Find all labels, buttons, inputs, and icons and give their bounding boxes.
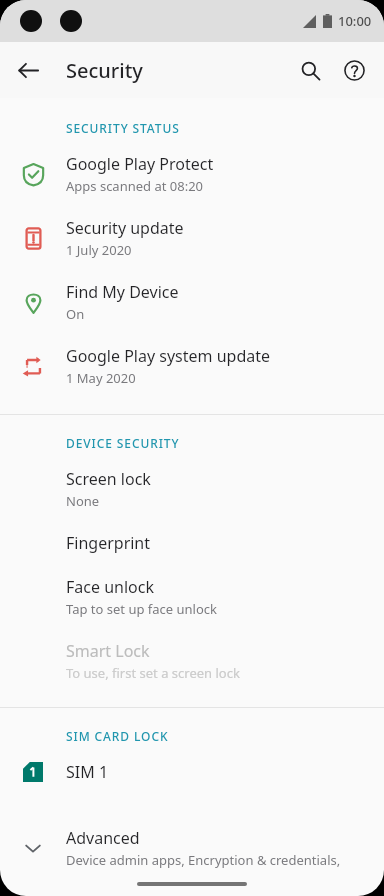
button[interactable]: Help	[332, 48, 376, 92]
staticText: SECURITY STATUS	[66, 120, 180, 136]
staticText: Device admin apps, Encryption & credenti…	[66, 851, 372, 869]
staticText: To use, first set a screen lock	[66, 664, 240, 682]
button[interactable]: Search	[288, 48, 332, 92]
staticText: Find My Device	[66, 281, 179, 303]
staticText: Tap to set up face unlock	[66, 600, 218, 618]
button[interactable]: Find My Device	[0, 270, 384, 334]
staticText: Google Play system update	[66, 345, 271, 367]
staticText: 10:00	[338, 12, 372, 30]
button[interactable]: Google Play system update	[0, 334, 384, 398]
button[interactable]: Google Play Protect	[0, 142, 384, 206]
button[interactable]: Back	[6, 48, 50, 92]
staticText: Security	[66, 57, 143, 84]
button[interactable]: Advanced	[0, 816, 384, 880]
button[interactable]: Screen lock	[0, 457, 384, 521]
button[interactable]: Smart Lock	[0, 629, 384, 693]
button[interactable]: Security update	[0, 206, 384, 270]
staticText: Google Play Protect	[66, 153, 214, 175]
button[interactable]: Face unlock	[0, 565, 384, 629]
button[interactable]: SIM 1	[0, 750, 384, 794]
staticText: None	[66, 492, 100, 510]
staticText: Fingerprint	[66, 532, 151, 554]
staticText: Security update	[66, 217, 184, 239]
staticText: 1 May 2020	[66, 369, 136, 387]
staticText: SIM CARD LOCK	[66, 728, 169, 744]
button[interactable]: Fingerprint	[0, 521, 384, 565]
staticText: SIM 1	[66, 761, 109, 783]
staticText: DEVICE SECURITY	[66, 435, 180, 451]
staticText: Screen lock	[66, 468, 151, 490]
staticText: Face unlock	[66, 576, 154, 598]
staticText: Apps scanned at 08:20	[66, 177, 204, 195]
staticText: Smart Lock	[66, 640, 150, 662]
staticText: 1 July 2020	[66, 241, 132, 259]
staticText: On	[66, 305, 85, 323]
staticText: Advanced	[66, 827, 140, 849]
